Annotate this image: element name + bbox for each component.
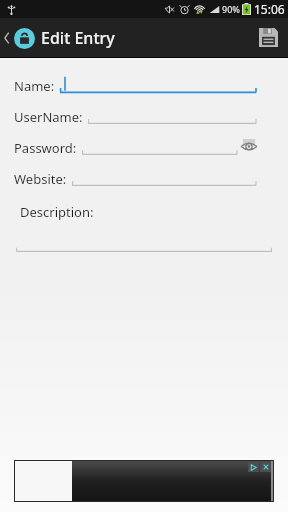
button[interactable]: UserName: — [0, 107, 288, 127]
staticText: Website: — [14, 170, 67, 188]
staticText: Password: — [14, 139, 77, 157]
button[interactable]: Show password — [240, 139, 258, 152]
button[interactable]: Advertisement — [14, 460, 274, 502]
staticText: Name: — [14, 77, 55, 95]
staticText: Edit Entry — [41, 27, 115, 49]
staticText: 15:06 — [254, 1, 285, 17]
button[interactable]: Name: — [0, 76, 288, 96]
button[interactable]: Save — [249, 20, 288, 55]
button[interactable]: Website: — [0, 169, 288, 189]
staticText: UserName: — [14, 108, 83, 126]
staticText: Description: — [20, 203, 94, 221]
staticText: 90% — [222, 3, 240, 15]
button[interactable]: Close ad — [260, 462, 271, 472]
button[interactable]: Navigate up — [0, 23, 121, 53]
button[interactable]: Ad choices — [248, 462, 259, 472]
button[interactable] — [16, 247, 272, 255]
button[interactable]: Password: — [0, 138, 288, 158]
